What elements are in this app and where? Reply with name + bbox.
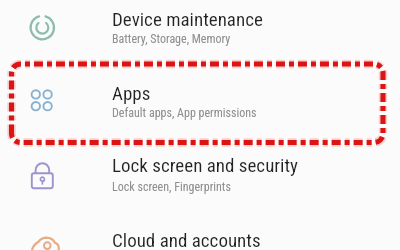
staticText: Device maintenance (112, 8, 263, 30)
staticText: Lock screen and security (112, 154, 299, 176)
staticText: Apps (112, 82, 151, 104)
staticText: Lock screen, Fingerprints (112, 180, 231, 194)
staticText: Default apps, App permissions (112, 106, 257, 120)
button[interactable]: Lock screen and security (0, 140, 400, 212)
staticText: Cloud and accounts (112, 229, 261, 250)
button[interactable]: Apps (0, 62, 400, 140)
button[interactable]: Device maintenance (0, 0, 400, 62)
staticText: Battery, Storage, Memory (112, 32, 231, 46)
button[interactable]: Cloud and accounts (0, 212, 400, 250)
